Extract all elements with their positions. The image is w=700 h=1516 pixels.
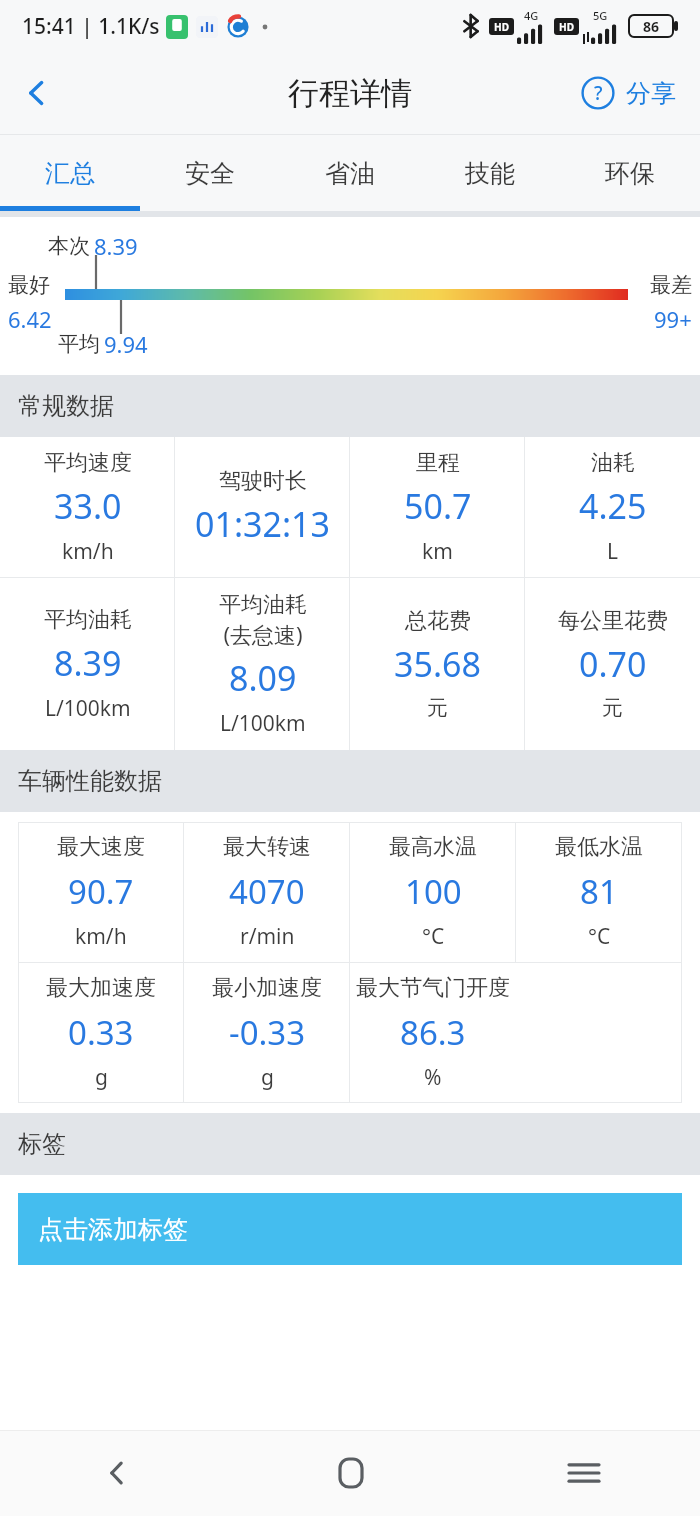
staticText: r/min [240, 922, 295, 951]
staticText: 最大转速 [223, 833, 311, 861]
button[interactable]: 汇总 [0, 135, 140, 211]
staticText: 最低水温 [555, 833, 643, 861]
staticText: 最小加速度 [212, 974, 322, 1002]
staticText: 6.42 [8, 304, 52, 334]
staticText: 最大速度 [57, 833, 145, 861]
staticText: 0.70 [579, 641, 647, 687]
staticText: 4.25 [579, 483, 647, 529]
staticText: 最大节气门开度 [356, 974, 510, 1002]
staticText: 技能 [465, 158, 515, 189]
staticText: g [261, 1063, 274, 1092]
staticText: 环保 [605, 158, 655, 189]
staticText: HD [494, 20, 509, 34]
staticText: 5G [593, 8, 608, 23]
staticText: °C [588, 922, 611, 951]
staticText: 省油 [325, 158, 375, 189]
staticText: L/100km [45, 694, 131, 723]
button[interactable]: 里程 [350, 437, 525, 577]
staticText: 行程详情 [288, 74, 412, 113]
staticText: km/h [75, 922, 127, 951]
button[interactable]: 返回 [0, 1430, 234, 1516]
button[interactable]: 每公里花费 [525, 578, 700, 750]
staticText: 01:32:13 [195, 501, 330, 547]
staticText: 驾驶时长 [219, 467, 307, 495]
button[interactable]: 最小加速度 [184, 963, 350, 1103]
staticText: L/100km [220, 709, 306, 738]
button[interactable]: 省油 [280, 135, 420, 211]
staticText: L [607, 537, 619, 566]
staticText: km/h [62, 537, 114, 566]
button[interactable]: 最高水温 [350, 822, 516, 962]
staticText: 本次 [48, 233, 90, 259]
staticText: 81 [580, 869, 618, 914]
staticText: °C [422, 922, 445, 951]
staticText: 8.39 [54, 640, 122, 686]
button[interactable]: 帮助 [576, 71, 620, 115]
button[interactable]: 最近任务 [467, 1430, 700, 1516]
button[interactable]: 点击添加标签 [18, 1193, 682, 1265]
staticText: 4G [524, 8, 539, 23]
staticText: 平均油耗 [44, 606, 132, 634]
staticText: 点击添加标签 [38, 1214, 188, 1245]
button[interactable]: 油耗 [525, 437, 700, 577]
staticText: 90.7 [68, 869, 134, 914]
staticText: 86.3 [400, 1010, 466, 1055]
staticText: km [422, 537, 453, 566]
button[interactable]: 最大节气门开度 [350, 963, 516, 1103]
staticText: 4070 [229, 869, 305, 914]
staticText: 分享 [626, 78, 676, 109]
staticText: 最好 [8, 272, 50, 298]
staticText: 33.0 [54, 483, 122, 529]
staticText: 平均油耗 [219, 591, 307, 619]
button[interactable]: 安全 [140, 135, 280, 211]
staticText: 平均速度 [44, 449, 132, 477]
staticText: 安全 [185, 158, 235, 189]
staticText: 15:41 | 1.1K/s [22, 12, 160, 41]
staticText: 最差 [650, 272, 692, 298]
button[interactable]: 最大转速 [184, 822, 350, 962]
staticText: 最高水温 [389, 833, 477, 861]
button[interactable]: 返回 [8, 64, 66, 122]
staticText: (去怠速) [223, 619, 303, 649]
staticText: 9.94 [104, 329, 148, 359]
staticText: 86 [643, 17, 660, 36]
staticText: 元 [602, 695, 623, 721]
staticText: 每公里花费 [558, 607, 668, 635]
staticText: 8.39 [94, 231, 138, 261]
staticText: HD [559, 20, 574, 34]
button[interactable]: 平均油耗 [175, 578, 350, 750]
staticText: 99+ [654, 304, 692, 334]
staticText: 最大加速度 [46, 974, 156, 1002]
button[interactable]: 环保 [560, 135, 700, 211]
button[interactable]: 平均油耗 [0, 578, 175, 750]
staticText: 平均 [58, 331, 100, 357]
button[interactable]: 最大加速度 [18, 963, 184, 1103]
staticText: 总花费 [405, 607, 471, 635]
button[interactable]: 平均速度 [0, 437, 175, 577]
staticText: ? [594, 80, 603, 106]
staticText: 8.09 [229, 655, 297, 701]
staticText: 35.68 [394, 641, 481, 687]
staticText: 元 [427, 695, 448, 721]
button[interactable]: 总花费 [350, 578, 525, 750]
staticText: 50.7 [404, 483, 472, 529]
button[interactable]: 驾驶时长 [175, 437, 350, 577]
button[interactable]: 最大速度 [18, 822, 184, 962]
staticText: 车辆性能数据 [18, 766, 162, 796]
staticText: 标签 [18, 1129, 66, 1159]
button[interactable]: 主页 [234, 1430, 467, 1516]
button[interactable]: 最低水温 [516, 822, 682, 962]
staticText: 0.33 [68, 1010, 134, 1055]
staticText: 里程 [416, 449, 460, 477]
button[interactable]: 分享 [620, 72, 682, 115]
staticText: g [95, 1063, 108, 1092]
staticText: 油耗 [591, 449, 635, 477]
staticText: % [424, 1063, 442, 1092]
button[interactable]: 技能 [420, 135, 560, 211]
staticText: 常规数据 [18, 391, 114, 421]
staticText: 汇总 [45, 158, 95, 189]
staticText: 100 [405, 869, 462, 914]
staticText: -0.33 [229, 1010, 306, 1055]
